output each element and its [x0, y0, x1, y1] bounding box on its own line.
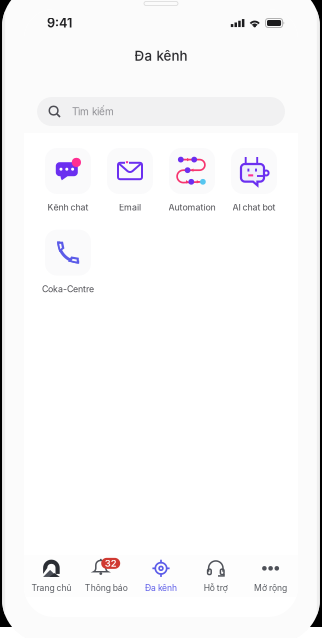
button[interactable]: Trang chủ: [24, 555, 79, 597]
button[interactable]: Coka-Centre: [37, 230, 99, 294]
button[interactable]: Email: [99, 148, 161, 213]
staticText: Trang chủ: [31, 583, 71, 593]
staticText: Kênh chat: [47, 202, 88, 213]
staticText: Đa kênh: [134, 48, 187, 64]
staticText: Thông báo: [85, 583, 128, 593]
staticText: Coka-Centre: [42, 284, 94, 294]
staticText: 32: [105, 558, 117, 569]
staticText: 9:41: [47, 15, 72, 31]
staticText: Email: [119, 202, 141, 213]
button[interactable]: Hỗ trợ: [188, 555, 243, 597]
button[interactable]: Mở rộng: [243, 555, 298, 597]
staticText: Tìm kiếm: [72, 105, 114, 118]
button[interactable]: Đa kênh: [134, 555, 188, 597]
button[interactable]: AI chat bot: [223, 148, 285, 213]
button[interactable]: Kênh chat: [37, 148, 99, 213]
staticText: AI chat bot: [232, 202, 275, 213]
staticText: Đa kênh: [145, 583, 177, 593]
staticText: Mở rộng: [254, 583, 287, 593]
staticText: Automation: [168, 202, 215, 213]
staticText: Hỗ trợ: [204, 583, 228, 593]
button[interactable]: Automation: [161, 148, 223, 213]
button[interactable]: 32: [79, 555, 134, 597]
button[interactable]: Tìm kiếm: [37, 97, 285, 126]
